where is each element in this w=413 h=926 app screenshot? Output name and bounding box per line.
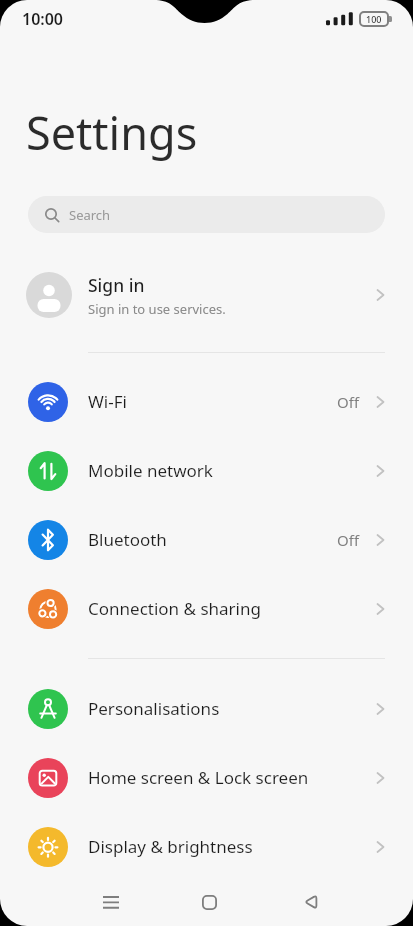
staticText: 100 [366,13,382,25]
staticText: Personalisations [88,697,220,720]
staticText: 10:00 [22,8,64,30]
staticText: Sign in to use services. [88,300,226,318]
staticText: Off [337,392,360,412]
staticText: Home screen & Lock screen [88,766,309,789]
button[interactable]: Bluetooth [0,505,413,574]
button[interactable]: Connection & sharing [0,574,413,643]
staticText: Mobile network [88,459,213,482]
button[interactable] [287,878,335,926]
staticText: Display & brightness [88,835,253,858]
staticText: Connection & sharing [88,597,261,620]
button[interactable]: Home screen & Lock screen [0,743,413,812]
button[interactable] [185,878,233,926]
staticText: Off [337,530,360,550]
button[interactable]: Search [28,196,385,233]
button[interactable]: Mobile network [0,436,413,505]
button[interactable]: Wi-Fi [0,367,413,436]
staticText: Bluetooth [88,528,167,551]
button[interactable]: Display & brightness [0,812,413,881]
staticText: Wi-Fi [88,390,127,413]
staticText: Search [69,206,111,224]
button[interactable] [87,878,135,926]
button[interactable]: Sign in [0,260,413,330]
button[interactable]: Personalisations [0,674,413,743]
staticText: Settings [26,102,198,163]
staticText: Sign in [88,273,145,297]
